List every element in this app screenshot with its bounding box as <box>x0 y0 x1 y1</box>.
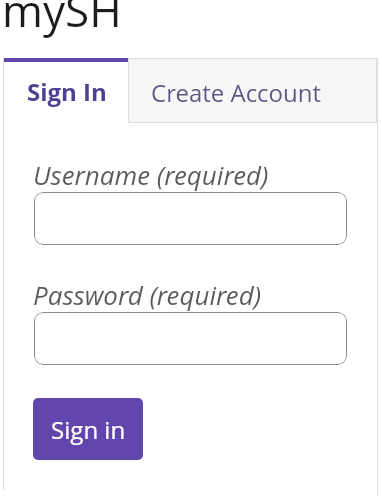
staticText: Sign in <box>51 413 126 446</box>
button[interactable]: Create Account <box>128 58 377 123</box>
staticText: Password (required) <box>33 277 262 312</box>
button[interactable]: Username (required) text field <box>34 192 347 245</box>
staticText: Sign In <box>27 75 107 108</box>
staticText: mySH <box>2 0 122 40</box>
button[interactable]: Sign In <box>4 58 128 123</box>
button[interactable]: Password (required) text field <box>34 312 347 365</box>
staticText: Username (required) <box>33 157 269 192</box>
staticText: Create Account <box>151 76 321 109</box>
button[interactable]: Sign in <box>33 398 143 460</box>
